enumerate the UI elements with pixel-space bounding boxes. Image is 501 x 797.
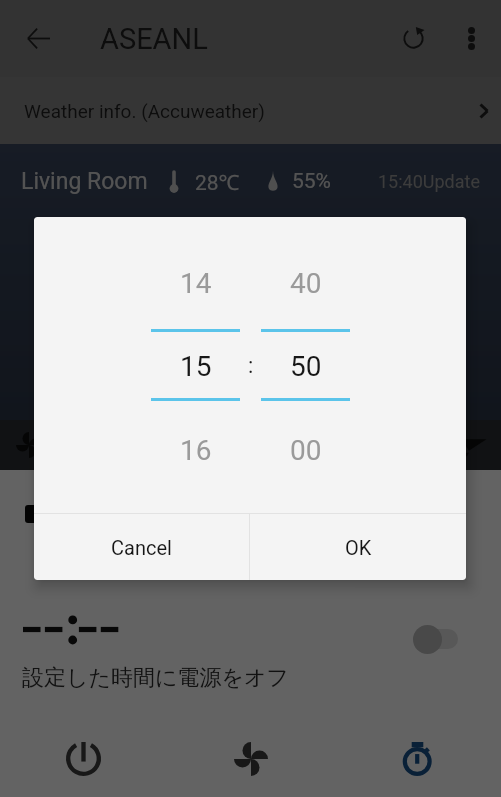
button[interactable]: Power bbox=[0, 720, 167, 797]
button[interactable]: 40 bbox=[261, 267, 350, 300]
button[interactable]: Refresh bbox=[383, 0, 442, 77]
button[interactable]: 16 bbox=[151, 434, 240, 467]
staticText: 40 bbox=[290, 267, 322, 300]
staticText: ASEANL bbox=[100, 22, 208, 56]
button[interactable]: More options bbox=[442, 0, 501, 77]
button[interactable]: 14 bbox=[151, 267, 240, 300]
button[interactable]: Fan bbox=[167, 720, 334, 797]
staticText: 14 bbox=[180, 267, 212, 300]
staticText: OK bbox=[345, 536, 372, 559]
button[interactable]: Back bbox=[0, 0, 77, 77]
staticText: 50 bbox=[290, 350, 322, 383]
staticText: Weather info. (Accuweather) bbox=[24, 100, 265, 122]
staticText: 55% bbox=[292, 169, 331, 194]
staticText: 設定した時間に電源をオフ bbox=[22, 664, 290, 692]
button[interactable]: 00 bbox=[261, 434, 350, 467]
button[interactable]: Cancel bbox=[34, 514, 249, 580]
staticText: 28℃ bbox=[195, 168, 240, 194]
button[interactable]: 50 bbox=[261, 350, 350, 383]
button[interactable]: Weather info. (Accuweather) bbox=[0, 77, 501, 144]
button[interactable]: Timer bbox=[334, 720, 501, 797]
staticText: 15 bbox=[180, 350, 212, 383]
staticText: 15:40Update bbox=[378, 171, 480, 192]
button[interactable]: Power off timer toggle bbox=[413, 621, 471, 657]
button[interactable]: 15 bbox=[151, 350, 240, 383]
staticText: 00 bbox=[290, 434, 322, 467]
staticText: Living Room bbox=[21, 168, 148, 194]
staticText: : bbox=[248, 353, 254, 379]
staticText: 16 bbox=[180, 434, 212, 467]
button[interactable]: OK bbox=[250, 514, 466, 580]
staticText: Cancel bbox=[111, 536, 172, 559]
